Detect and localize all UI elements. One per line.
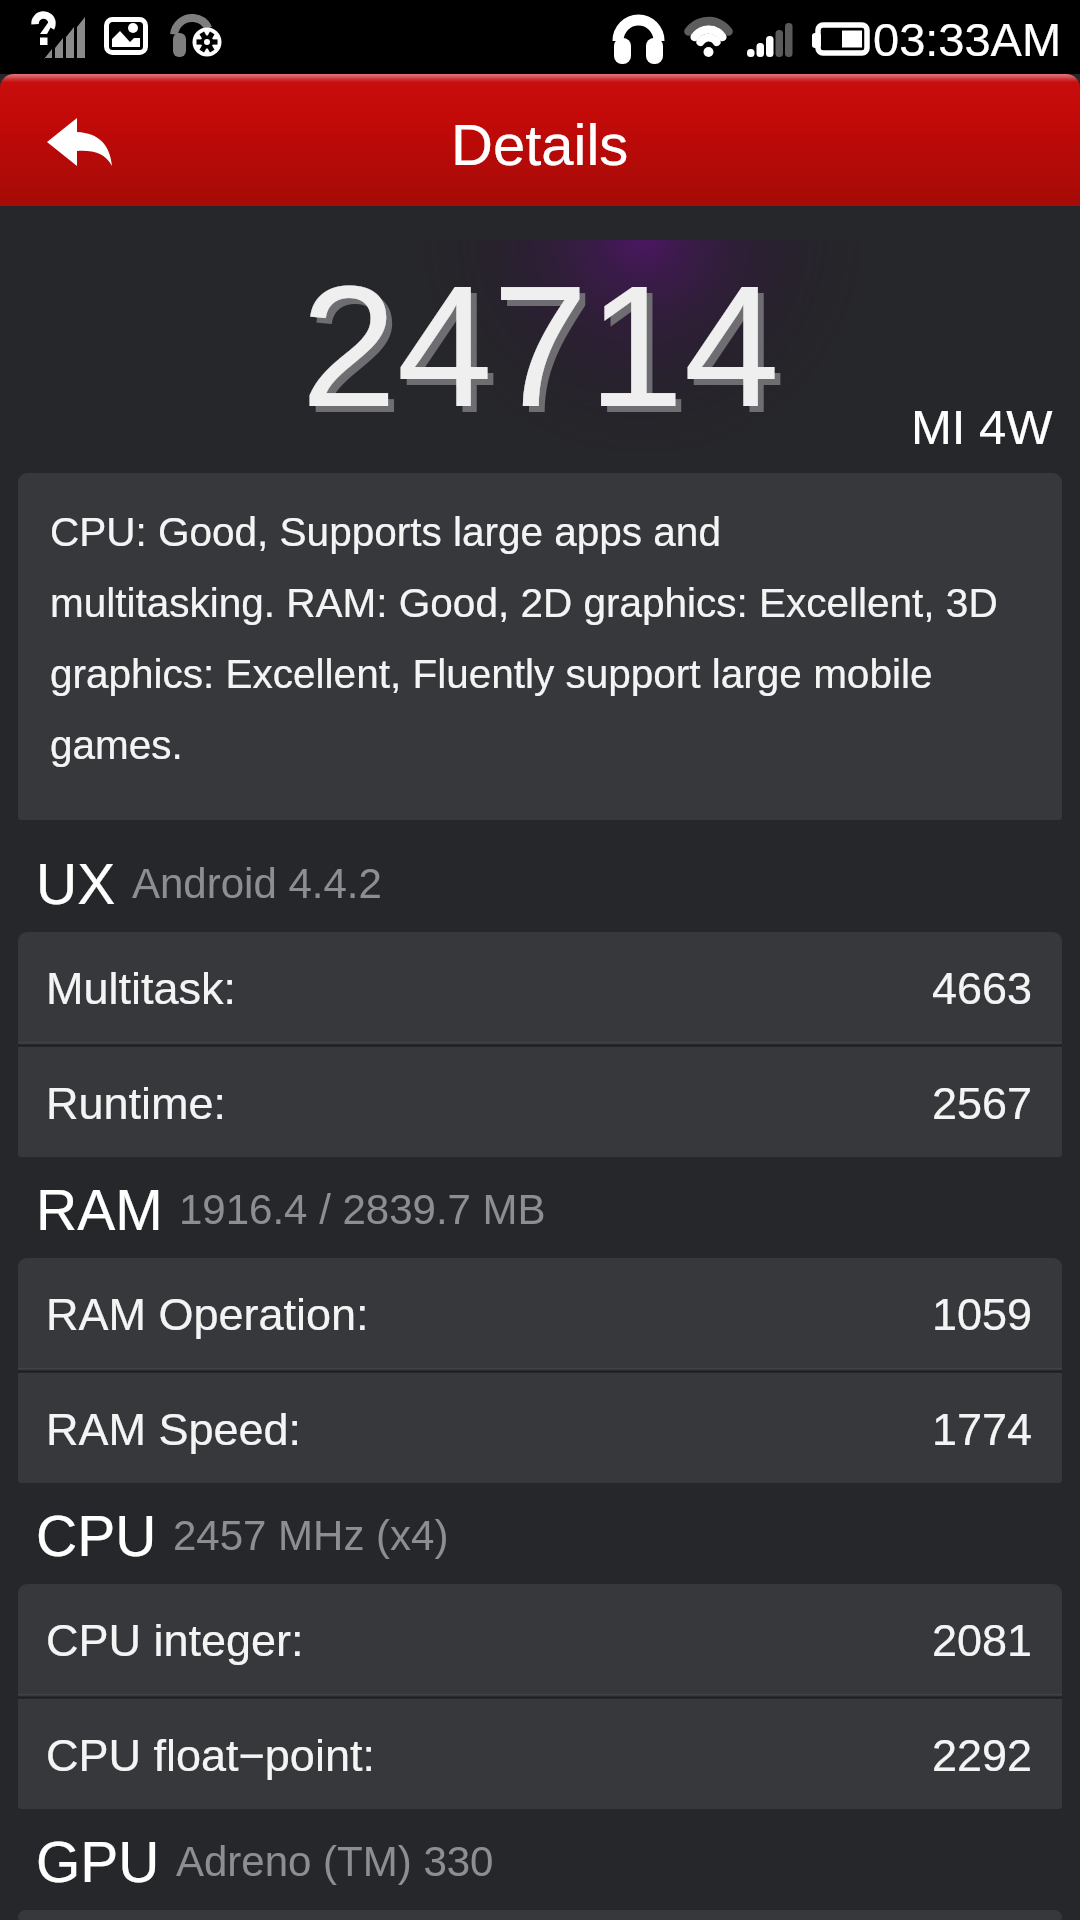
staticText: UX <box>36 852 116 916</box>
button[interactable]: RAM Speed: <box>18 1373 1062 1483</box>
button[interactable]: RAM Operation: <box>18 1258 1062 1368</box>
button[interactable]: Runtime: <box>18 1047 1062 1157</box>
staticText: 1916.4 / 2839.7 MB <box>179 1186 546 1233</box>
staticText: CPU float−point: <box>46 1730 375 1780</box>
button[interactable]: Multitask: <box>18 932 1062 1042</box>
staticText: Android 4.4.2 <box>132 860 382 907</box>
staticText: RAM Speed: <box>46 1404 302 1454</box>
staticText: 1774 <box>932 1404 1033 1454</box>
staticText: GPU <box>36 1830 160 1894</box>
staticText: 2457 MHz (x4) <box>173 1512 449 1559</box>
button[interactable]: CPU integer: <box>18 1584 1062 1694</box>
staticText: 2292 <box>932 1730 1033 1780</box>
staticText: 03:33AM <box>873 13 1062 66</box>
staticText: CPU: Good, Supports large apps and multi… <box>50 509 998 767</box>
staticText: 24714 <box>301 250 780 442</box>
staticText: CPU <box>36 1504 157 1568</box>
staticText: RAM <box>36 1178 163 1242</box>
staticText: 2081 <box>932 1615 1033 1665</box>
staticText: 24714 <box>307 256 786 448</box>
staticText: Details <box>451 112 629 177</box>
staticText: 1059 <box>932 1289 1033 1339</box>
staticText: Runtime: <box>46 1078 227 1128</box>
staticText: Multitask: <box>46 963 237 1013</box>
staticText: 4663 <box>932 963 1033 1013</box>
staticText: RAM Operation: <box>46 1289 369 1339</box>
button[interactable]: Back <box>14 74 146 206</box>
staticText: MI 4W <box>911 400 1053 455</box>
staticText: Adreno (TM) 330 <box>176 1838 494 1885</box>
staticText: CPU integer: <box>46 1615 304 1665</box>
staticText: 2567 <box>932 1078 1033 1128</box>
button[interactable]: CPU float−point: <box>18 1699 1062 1809</box>
